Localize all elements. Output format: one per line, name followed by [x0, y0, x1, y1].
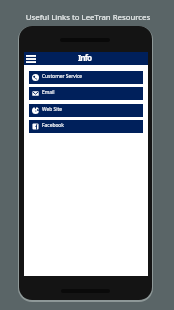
staticText: Customer Service	[42, 73, 83, 80]
staticText: Useful Links to LeeTran Resources	[1, 12, 174, 23]
staticText: Web Site	[42, 106, 62, 113]
button[interactable]: Facebook	[29, 120, 143, 133]
button[interactable]: Email	[29, 87, 143, 100]
button[interactable]: Web Site	[29, 104, 143, 117]
staticText: Info	[78, 52, 92, 63]
staticText: Facebook	[42, 122, 64, 129]
button[interactable]: Menu	[25, 53, 37, 65]
button[interactable]: Customer Service	[29, 71, 143, 84]
staticText: Email	[42, 89, 55, 96]
